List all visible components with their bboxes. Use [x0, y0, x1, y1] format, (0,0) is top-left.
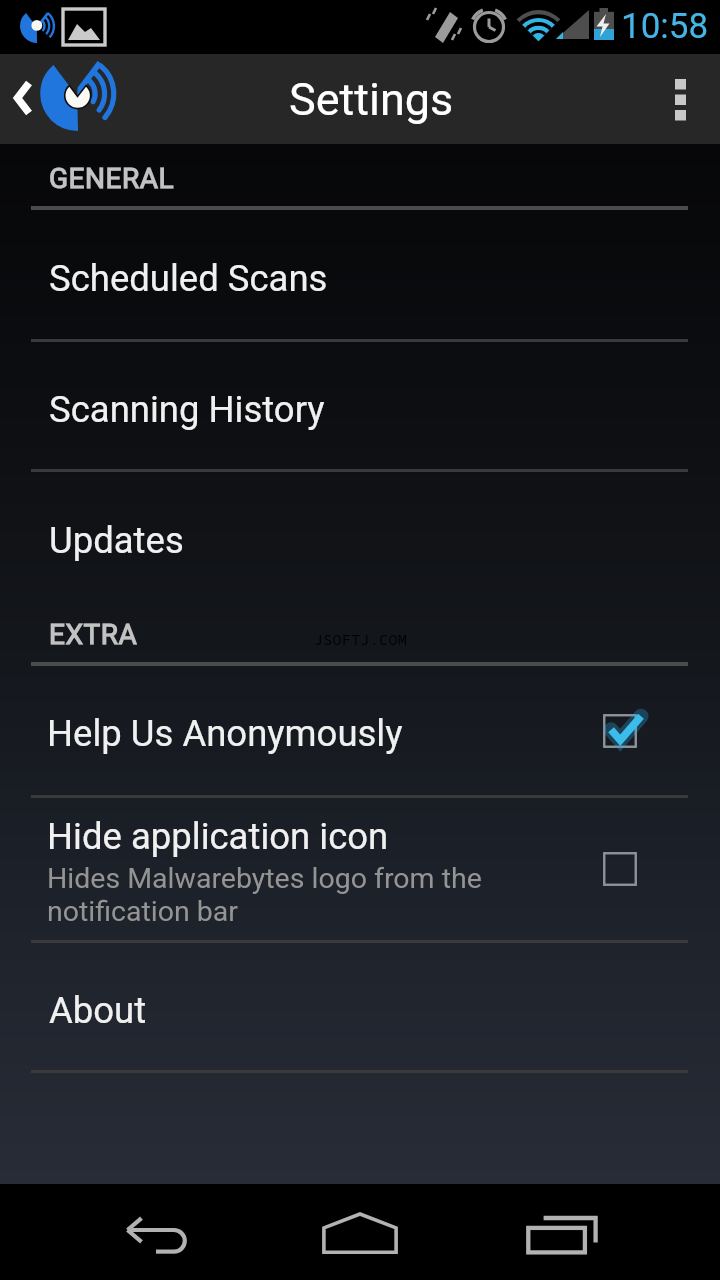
- staticText: About: [49, 989, 147, 1032]
- staticText: Hides Malwarebytes logo from the notific…: [47, 862, 482, 928]
- button[interactable]: Scheduled Scans: [0, 210, 720, 342]
- staticText: JSOFTJ.COM: [314, 629, 408, 649]
- staticText: Updates: [49, 519, 184, 562]
- button[interactable]: About: [0, 943, 720, 1073]
- button[interactable]: Scanning History: [0, 342, 720, 472]
- staticText: Settings: [289, 73, 454, 126]
- staticText: Help Us Anonymously: [47, 712, 403, 755]
- staticText: Scheduled Scans: [49, 257, 328, 300]
- staticText: Hide application icon: [47, 815, 389, 858]
- button[interactable]: Hide application icon: [0, 798, 720, 943]
- button[interactable]: Home: [280, 1184, 440, 1280]
- staticText: EXTRA: [49, 618, 138, 651]
- button[interactable]: Navigate up: [0, 54, 130, 144]
- staticText: Scanning History: [49, 388, 325, 431]
- button[interactable]: Updates: [0, 472, 720, 600]
- button[interactable]: Help Us Anonymously: [0, 666, 720, 798]
- button[interactable]: More options: [640, 54, 720, 144]
- button[interactable]: Recent apps: [482, 1184, 642, 1280]
- staticText: 10:58: [621, 6, 709, 47]
- staticText: GENERAL: [49, 162, 174, 195]
- button[interactable]: Back: [76, 1184, 236, 1280]
